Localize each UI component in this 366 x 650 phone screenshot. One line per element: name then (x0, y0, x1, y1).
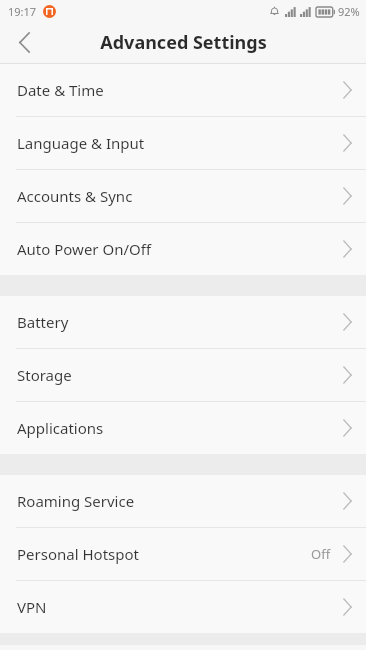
button[interactable]: Applications (0, 402, 366, 454)
staticText: Roaming Service (17, 491, 135, 511)
button[interactable]: Personal Hotspot (0, 528, 366, 580)
staticText: 92% (338, 4, 360, 19)
staticText: Language & Input (17, 133, 145, 153)
staticText: Date & Time (17, 80, 104, 100)
staticText: Accounts & Sync (17, 186, 133, 206)
staticText: Off (311, 545, 331, 563)
button[interactable]: Auto Power On/Off (0, 223, 366, 275)
button[interactable]: Date & Time (0, 64, 366, 116)
button[interactable]: Back (0, 22, 48, 63)
staticText: 19:17 (8, 4, 37, 19)
staticText: VPN (17, 597, 47, 617)
button[interactable]: Roaming Service (0, 475, 366, 527)
button[interactable]: Accounts & Sync (0, 170, 366, 222)
staticText: Storage (17, 365, 72, 385)
button[interactable]: Language & Input (0, 117, 366, 169)
staticText: Advanced Settings (100, 30, 267, 55)
staticText: Auto Power On/Off (17, 239, 152, 259)
button[interactable]: Storage (0, 349, 366, 401)
staticText: Personal Hotspot (17, 544, 139, 564)
staticText: Battery (17, 312, 69, 332)
staticText: Applications (17, 418, 104, 438)
button[interactable]: Battery (0, 296, 366, 348)
button[interactable]: VPN (0, 581, 366, 633)
